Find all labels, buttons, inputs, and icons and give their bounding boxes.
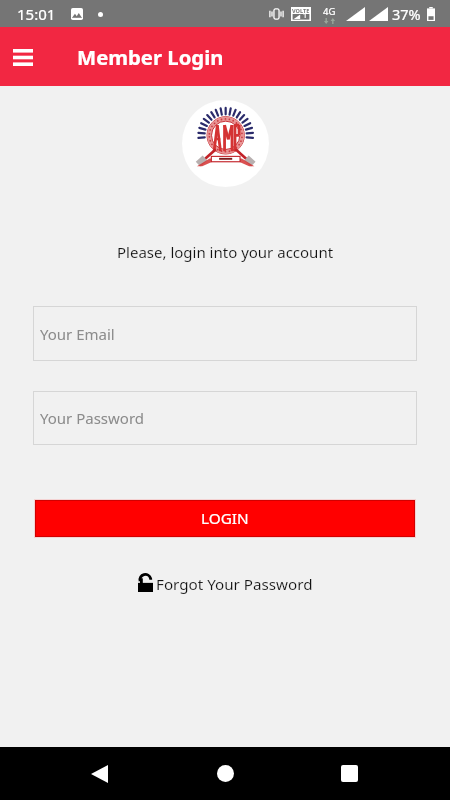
button[interactable]: Forgot Your Password [138,574,313,595]
staticText: LOGIN [201,508,249,529]
button[interactable]: Home [203,751,248,796]
staticText: Member Login [77,43,224,71]
staticText: 4G [323,5,336,18]
staticText: 15:01 [17,4,56,24]
staticText: Forgot Your Password [156,574,313,595]
staticText: Your Password [40,408,145,428]
staticText: Your Email [40,324,115,344]
staticText: 1 [303,11,308,21]
staticText: 37% [392,4,421,24]
staticText: Please, login into your account [117,242,334,262]
staticText: VOLTE [292,7,310,15]
button[interactable]: Menu [1,35,45,79]
button[interactable]: LOGIN [35,500,415,537]
button[interactable]: Recents [327,751,372,796]
button[interactable]: Your Email [33,306,417,361]
button[interactable]: Your Password [33,391,417,445]
button[interactable]: Back [77,751,122,796]
